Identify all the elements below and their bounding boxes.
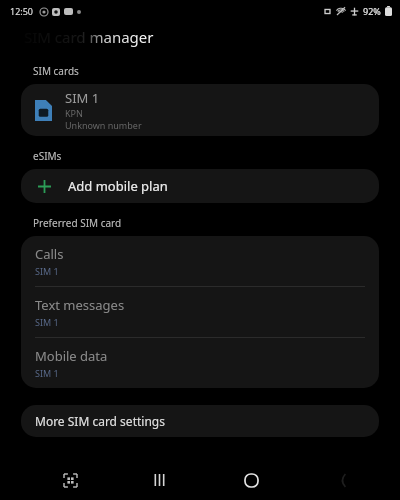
staticText: SIM cards — [33, 64, 79, 78]
button[interactable]: Mobile data — [21, 338, 379, 388]
staticText: Preferred SIM card — [33, 216, 122, 230]
button[interactable]: Back — [326, 463, 360, 497]
button[interactable]: Home — [234, 463, 268, 497]
staticText: KPN — [65, 107, 83, 119]
staticText: 12:50 — [10, 5, 34, 17]
button[interactable]: Text messages — [21, 287, 379, 337]
staticText: Mobile data — [35, 347, 108, 365]
staticText: eSIMs — [33, 149, 62, 163]
button[interactable]: Recent apps — [142, 463, 176, 497]
staticText: Add mobile plan — [68, 177, 168, 195]
staticText: SIM 1 — [35, 316, 59, 328]
button[interactable]: Screenshot — [55, 465, 85, 495]
staticText: Unknown number — [65, 119, 142, 131]
button[interactable]: SIM 1 — [21, 84, 379, 136]
button[interactable]: Calls — [21, 236, 379, 286]
staticText: SIM 1 — [35, 367, 59, 379]
staticText: Calls — [35, 245, 64, 263]
staticText: SIM 1 — [35, 265, 59, 277]
staticText: More SIM card settings — [35, 413, 165, 429]
staticText: Text messages — [35, 296, 125, 314]
staticText: 92% — [363, 5, 381, 17]
staticText: SIM card manager — [24, 27, 154, 47]
button[interactable]: More SIM card settings — [21, 405, 379, 437]
button[interactable]: Add mobile plan — [21, 169, 379, 203]
staticText: SIM 1 — [65, 89, 100, 107]
